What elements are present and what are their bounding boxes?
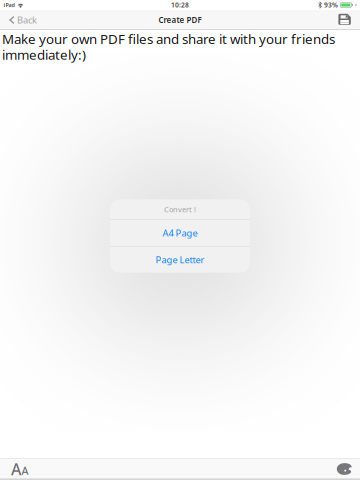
staticText: 93% <box>324 1 338 9</box>
staticText: iPad <box>3 1 14 9</box>
staticText: A <box>21 463 28 478</box>
staticText: A <box>11 458 21 480</box>
staticText: Convert ! <box>164 204 196 214</box>
button[interactable]: Page Letter <box>110 247 250 273</box>
staticText: A4 Page <box>162 227 197 239</box>
staticText: 10:28 <box>171 1 189 9</box>
staticText: Create PDF <box>158 15 201 25</box>
staticText: Make your own PDF files and share it wit… <box>2 30 335 63</box>
button[interactable]: Back <box>4 11 43 29</box>
button[interactable]: Hide keyboard <box>331 461 357 477</box>
staticText: Back <box>17 14 37 26</box>
button[interactable]: Save <box>333 12 356 28</box>
staticText: Page Letter <box>155 253 204 266</box>
button[interactable]: Text format <box>3 456 33 480</box>
button[interactable]: A4 Page <box>110 220 250 246</box>
